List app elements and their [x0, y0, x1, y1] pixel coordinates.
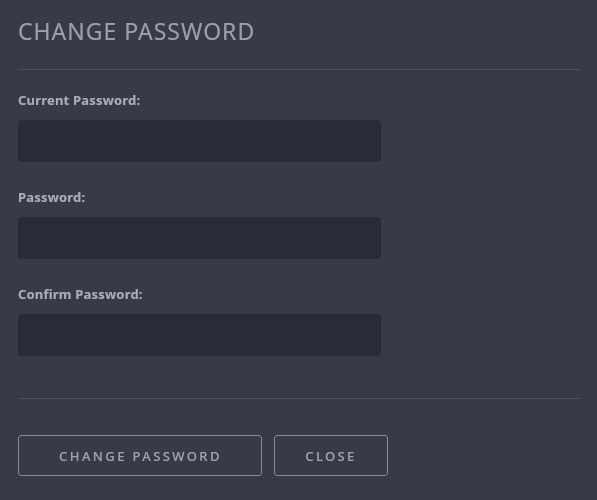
button[interactable]: CHANGE PASSWORD — [18, 435, 262, 476]
staticText: Confirm Password: — [18, 285, 143, 303]
staticText: Current Password: — [18, 91, 141, 109]
staticText: Password: — [18, 188, 86, 206]
staticText: CHANGE PASSWORD — [59, 447, 222, 465]
staticText: CLOSE — [305, 447, 357, 465]
button[interactable]: CLOSE — [274, 435, 388, 476]
staticText: CHANGE PASSWORD — [18, 15, 256, 46]
